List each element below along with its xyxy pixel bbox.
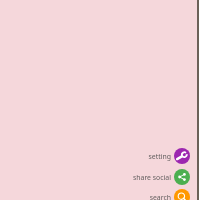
button[interactable]: setting <box>119 148 190 164</box>
staticText: setting <box>148 152 171 161</box>
button[interactable]: share social <box>119 169 190 185</box>
button[interactable]: search <box>119 189 190 200</box>
staticText: share social <box>132 173 171 182</box>
staticText: search <box>149 193 171 200</box>
